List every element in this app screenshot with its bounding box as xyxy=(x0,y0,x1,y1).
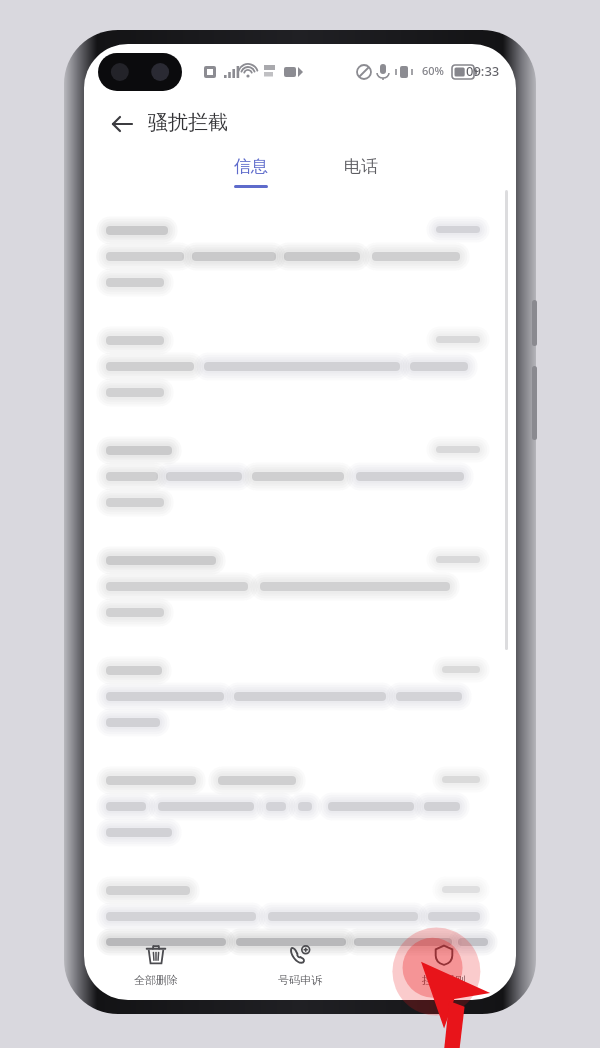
button[interactable]: 电话 xyxy=(322,156,400,202)
button[interactable]: 信息 xyxy=(212,156,290,202)
staticText: 09:33 xyxy=(466,62,500,80)
button[interactable]: 号码申诉 xyxy=(228,936,372,1000)
staticText: 骚扰拦截 xyxy=(148,110,228,135)
staticText: 拦截规则 xyxy=(422,973,466,987)
button[interactable]: 全部删除 xyxy=(84,936,228,1000)
staticText: 信息 xyxy=(234,156,268,177)
staticText: 电话 xyxy=(344,156,378,177)
staticText: 60% xyxy=(422,63,444,78)
staticText: 全部删除 xyxy=(134,973,178,987)
button[interactable]: 拦截规则 xyxy=(372,936,516,1000)
button[interactable]: Back xyxy=(98,102,146,146)
staticText: 号码申诉 xyxy=(278,973,322,987)
